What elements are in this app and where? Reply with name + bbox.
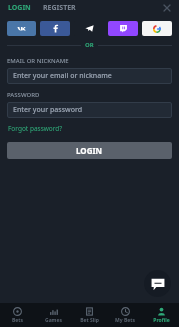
button[interactable]: Twitch: [108, 21, 138, 36]
button[interactable]: LOGIN: [0, 0, 37, 15]
button[interactable]: Games: [35, 303, 71, 327]
staticText: Enter your email or nickname: [13, 71, 112, 81]
staticText: Profile: [153, 317, 170, 324]
button[interactable]: My Bets: [107, 303, 143, 327]
staticText: PASSWORD: [7, 91, 40, 99]
staticText: Bets: [12, 317, 23, 324]
staticText: OR: [85, 41, 94, 49]
staticText: Enter your password: [13, 105, 83, 115]
button[interactable]: Bets: [0, 303, 35, 327]
button[interactable]: Telegram: [74, 21, 104, 36]
button[interactable]: Forgot password?: [8, 123, 63, 134]
button[interactable]: Google: [142, 21, 172, 36]
button[interactable]: Chat support: [144, 270, 171, 297]
staticText: LOGIN: [8, 3, 31, 12]
button[interactable]: Profile: [143, 303, 179, 327]
staticText: Games: [45, 317, 62, 324]
button[interactable]: REGISTER: [37, 0, 82, 15]
button[interactable]: Close: [161, 2, 173, 14]
button[interactable]: Enter your email or nickname: [7, 68, 172, 84]
button[interactable]: Enter your password: [7, 102, 172, 118]
staticText: My Bets: [115, 317, 135, 324]
staticText: LOGIN: [76, 145, 103, 156]
button[interactable]: VK: [7, 21, 36, 36]
staticText: Bet Slip: [80, 317, 99, 324]
staticText: EMAIL OR NICKNAME: [7, 57, 69, 65]
button[interactable]: LOGIN: [7, 142, 172, 159]
staticText: REGISTER: [43, 3, 76, 12]
button[interactable]: Bet Slip: [71, 303, 107, 327]
button[interactable]: Facebook: [40, 21, 70, 36]
staticText: Forgot password?: [8, 124, 63, 133]
